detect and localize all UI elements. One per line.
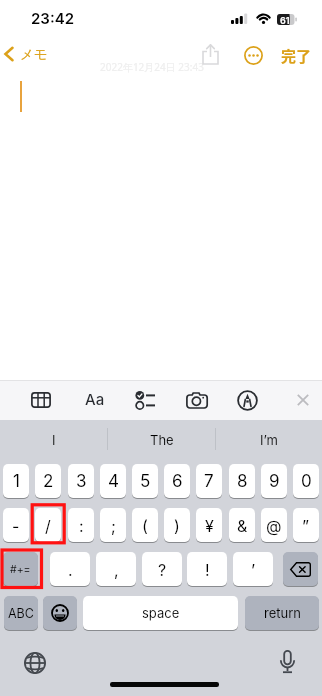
button[interactable]: ?	[142, 552, 182, 586]
button[interactable]: !	[187, 552, 227, 586]
staticText: 1	[13, 471, 20, 492]
staticText: :	[79, 516, 84, 535]
staticText: !	[205, 560, 210, 579]
staticText: -	[12, 516, 20, 535]
staticText: &	[237, 516, 248, 535]
button[interactable]: 完了	[281, 45, 312, 67]
staticText: ABC	[8, 606, 34, 621]
button[interactable]: space	[83, 596, 238, 630]
button[interactable]: I	[0, 421, 107, 459]
staticText: The	[150, 432, 174, 448]
staticText: @	[266, 516, 282, 535]
button[interactable]	[297, 394, 309, 406]
staticText: .	[68, 560, 73, 579]
staticText: ,	[114, 560, 119, 579]
button[interactable]: #+=	[3, 552, 38, 586]
button[interactable]	[24, 652, 46, 674]
button[interactable]	[4, 47, 14, 61]
staticText: ¥	[205, 516, 214, 535]
button[interactable]: ’	[233, 552, 273, 586]
staticText: /	[45, 516, 51, 535]
staticText: 2022年12月24日 23:43	[100, 60, 204, 74]
staticText: ”	[302, 516, 310, 535]
button[interactable]: The	[108, 421, 215, 459]
button[interactable]	[283, 552, 318, 586]
staticText: #+=	[10, 563, 31, 576]
staticText: I	[52, 432, 56, 448]
button[interactable]: 2	[35, 464, 61, 498]
button[interactable]	[280, 650, 295, 675]
staticText: ?	[158, 560, 167, 579]
button[interactable]: メモ	[20, 46, 48, 63]
button[interactable]: ¥	[196, 508, 222, 542]
button[interactable]	[237, 390, 258, 411]
button[interactable]: 3	[68, 464, 94, 498]
button[interactable]: :	[68, 508, 94, 542]
staticText: 3	[76, 471, 87, 492]
button[interactable]: ”	[293, 508, 319, 542]
staticText: 0	[301, 471, 312, 492]
staticText: (	[142, 516, 148, 535]
button[interactable]: ABC	[4, 596, 38, 630]
button[interactable]: &	[229, 508, 255, 542]
button[interactable]: 9	[261, 464, 287, 498]
staticText: ’	[251, 560, 256, 579]
button[interactable]: ;	[100, 508, 126, 542]
staticText: 61	[280, 15, 290, 26]
staticText: 2	[43, 471, 54, 492]
staticText: 6	[172, 471, 183, 492]
staticText: space	[142, 605, 180, 621]
staticText: 23:42	[31, 9, 75, 27]
button[interactable]: 7	[196, 464, 222, 498]
button[interactable]: 5	[132, 464, 158, 498]
staticText: ;	[111, 516, 116, 535]
button[interactable]: return	[245, 596, 319, 630]
staticText: 4	[108, 471, 119, 492]
button[interactable]: @	[261, 508, 287, 542]
button[interactable]: -	[3, 508, 29, 542]
button[interactable]	[43, 596, 77, 630]
staticText: I’m	[260, 432, 278, 448]
staticText: 8	[237, 471, 248, 492]
button[interactable]: 6	[164, 464, 190, 498]
button[interactable]: I’m	[215, 421, 322, 459]
button[interactable]	[135, 391, 156, 410]
staticText: return	[264, 605, 301, 621]
button[interactable]: 0	[293, 464, 319, 498]
button[interactable]	[244, 46, 263, 65]
button[interactable]	[186, 391, 208, 409]
button[interactable]: (	[132, 508, 158, 542]
button[interactable]	[202, 44, 219, 65]
button[interactable]: ,	[96, 552, 136, 586]
staticText: 5	[140, 471, 151, 492]
staticText: 7	[204, 471, 214, 492]
button[interactable]: 8	[229, 464, 255, 498]
button[interactable]	[31, 392, 51, 408]
button[interactable]: .	[50, 552, 90, 586]
button[interactable]: 4	[100, 464, 126, 498]
button[interactable]: )	[164, 508, 190, 542]
staticText: )	[174, 516, 180, 535]
button[interactable]: 1	[3, 464, 29, 498]
button[interactable]: /	[35, 508, 61, 542]
button[interactable]: Aa	[85, 390, 105, 408]
staticText: 9	[269, 471, 280, 492]
